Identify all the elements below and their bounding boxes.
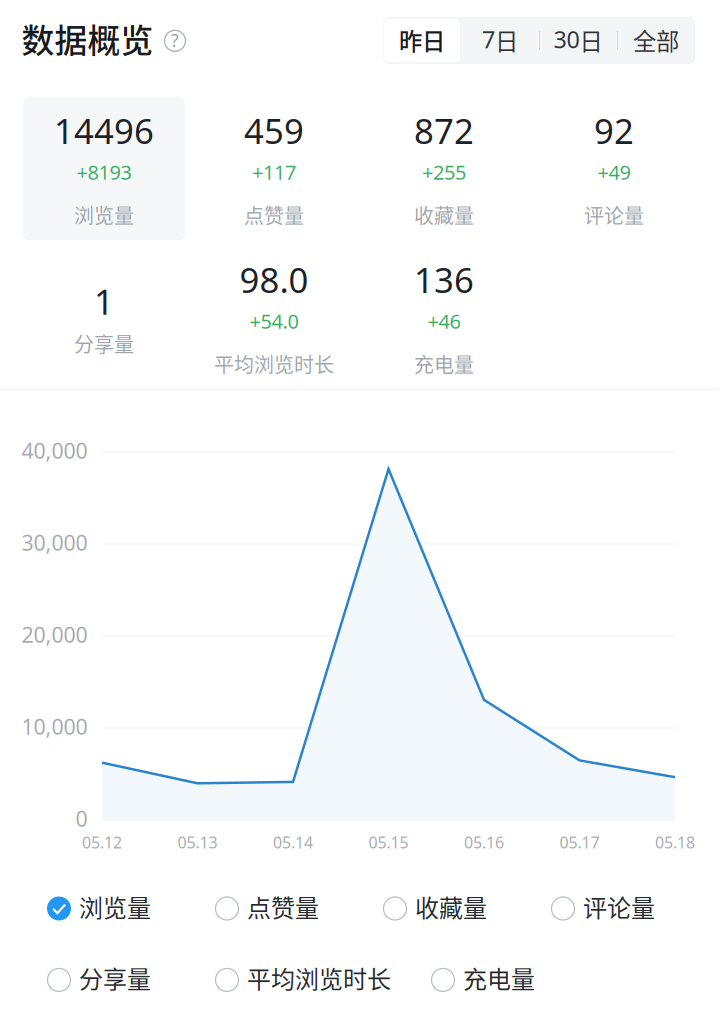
button[interactable]: 136	[363, 246, 525, 389]
staticText: 点赞量	[244, 200, 304, 229]
staticText: 分享量	[79, 960, 151, 995]
button[interactable]: 98.0	[193, 246, 355, 389]
staticText: 30日	[553, 23, 602, 57]
button[interactable]: 收藏量	[383, 891, 551, 925]
staticText: 收藏量	[414, 200, 474, 229]
staticText: +46	[427, 307, 460, 334]
staticText: 459	[244, 107, 304, 154]
staticText: 浏览量	[74, 200, 134, 229]
staticText: 40,000	[21, 436, 87, 465]
staticText: 0	[75, 804, 87, 833]
staticText: 评论量	[583, 889, 655, 924]
staticText: 872	[414, 107, 474, 154]
staticText: 平均浏览时长	[247, 960, 391, 995]
button[interactable]: 点赞量	[215, 891, 383, 925]
button[interactable]: 7日	[461, 17, 539, 64]
staticText: 平均浏览时长	[214, 349, 334, 378]
button[interactable]: 1	[23, 246, 185, 389]
button[interactable]: 14496	[23, 97, 185, 240]
staticText: +117	[252, 158, 296, 185]
button[interactable]: 全部	[617, 17, 695, 64]
staticText: 评论量	[584, 200, 644, 229]
button[interactable]: 浏览量	[47, 891, 215, 925]
button[interactable]: 30日	[539, 17, 617, 64]
button[interactable]: 平均浏览时长	[215, 963, 431, 997]
staticText: 20,000	[21, 620, 87, 649]
staticText: 收藏量	[415, 889, 487, 924]
staticText: 05.15	[368, 831, 408, 853]
staticText: +8193	[76, 158, 131, 185]
button[interactable]: 数据说明	[160, 26, 190, 56]
staticText: 充电量	[414, 349, 474, 378]
staticText: +49	[597, 158, 630, 185]
staticText: 点赞量	[247, 889, 319, 924]
staticText: ?	[171, 28, 179, 52]
staticText: 98.0	[239, 256, 308, 303]
staticText: 7日	[482, 23, 518, 57]
button[interactable]: 评论量	[551, 891, 719, 925]
button[interactable]: 昨日	[383, 17, 461, 64]
staticText: 浏览量	[79, 889, 151, 924]
staticText: 92	[594, 107, 634, 154]
staticText: 05.13	[177, 831, 217, 853]
staticText: 10,000	[21, 712, 87, 741]
button[interactable]: 分享量	[47, 963, 215, 997]
staticText: 30,000	[21, 528, 87, 557]
button[interactable]: 872	[363, 97, 525, 240]
staticText: 05.17	[559, 831, 599, 853]
button[interactable]: 459	[193, 97, 355, 240]
staticText: 分享量	[74, 329, 134, 358]
staticText: 05.14	[273, 831, 313, 853]
button[interactable]: 92	[533, 97, 695, 240]
staticText: 数据概览	[21, 15, 153, 62]
staticText: 充电量	[463, 960, 535, 995]
staticText: 14496	[54, 107, 154, 154]
staticText: 136	[414, 256, 474, 303]
staticText: +255	[422, 158, 466, 185]
staticText: +54.0	[249, 307, 298, 334]
staticText: 1	[94, 278, 114, 325]
staticText: 全部	[633, 23, 679, 57]
staticText: 05.18	[655, 831, 695, 853]
staticText: 昨日	[399, 23, 445, 57]
button[interactable]: 充电量	[431, 963, 599, 997]
staticText: 05.12	[82, 831, 122, 853]
staticText: 05.16	[464, 831, 504, 853]
